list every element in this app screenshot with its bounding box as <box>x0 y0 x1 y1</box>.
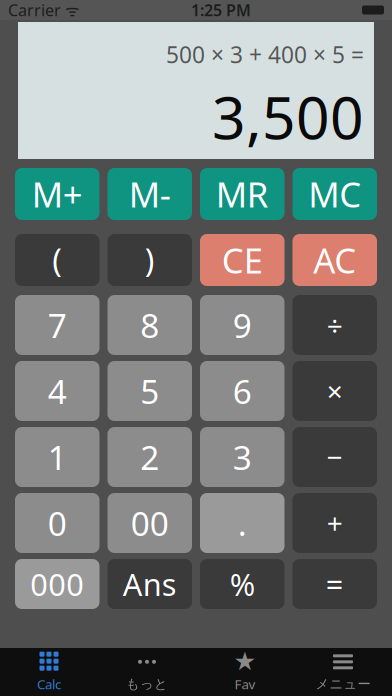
staticText: 3,500 <box>212 78 364 155</box>
button[interactable]: ) <box>107 234 192 286</box>
staticText: Fav <box>234 675 255 693</box>
staticText: Ans <box>123 564 177 604</box>
button[interactable]: − <box>292 427 377 487</box>
staticText: 3 <box>233 435 252 479</box>
button[interactable]: 8 <box>107 295 192 355</box>
staticText: Carrier ᯤ <box>8 0 80 21</box>
button[interactable]: . <box>200 493 284 553</box>
button[interactable]: ( <box>15 234 99 286</box>
staticText: 1 <box>48 435 67 479</box>
button[interactable]: 0 <box>15 493 99 553</box>
button[interactable]: 000 <box>15 559 99 609</box>
button[interactable]: MR <box>200 168 284 220</box>
staticText: 8 <box>140 303 159 347</box>
staticText: ) <box>145 239 155 281</box>
staticText: MR <box>216 171 269 217</box>
staticText: ★ <box>233 647 256 676</box>
staticText: 00 <box>131 501 169 545</box>
staticText: 7 <box>48 303 67 347</box>
staticText: もっと <box>126 676 168 692</box>
button[interactable]: Calc <box>0 648 98 696</box>
button[interactable]: 2 <box>107 427 192 487</box>
button[interactable]: ÷ <box>292 295 377 355</box>
button[interactable]: AC <box>292 234 377 286</box>
staticText: × <box>327 372 343 410</box>
button[interactable]: MC <box>292 168 377 220</box>
staticText: M+ <box>32 171 83 217</box>
button[interactable]: ★ <box>196 648 294 696</box>
button[interactable]: 1 <box>15 427 99 487</box>
staticText: 0 <box>48 501 67 545</box>
staticText: 2 <box>140 435 159 479</box>
staticText: 000 <box>30 564 84 604</box>
button[interactable]: CE <box>200 234 284 286</box>
staticText: + <box>327 504 343 542</box>
button[interactable]: M- <box>107 168 192 220</box>
staticText: 9 <box>233 303 252 347</box>
staticText: 5 <box>140 369 159 413</box>
staticText: ( <box>52 239 62 281</box>
staticText: 4 <box>48 369 67 413</box>
button[interactable]: メニュー <box>294 648 392 696</box>
button[interactable]: + <box>292 493 377 553</box>
button[interactable]: 3 <box>200 427 284 487</box>
staticText: AC <box>313 237 356 283</box>
staticText: = <box>326 564 344 604</box>
button[interactable]: × <box>292 361 377 421</box>
button[interactable]: 5 <box>107 361 192 421</box>
button[interactable]: 00 <box>107 493 192 553</box>
button[interactable]: = <box>292 559 377 609</box>
staticText: Calc <box>37 675 61 693</box>
button[interactable]: Ans <box>107 559 192 609</box>
button[interactable]: もっと <box>98 648 196 696</box>
staticText: − <box>327 438 343 476</box>
staticText: M- <box>129 171 171 217</box>
staticText: % <box>230 564 255 604</box>
button[interactable]: 4 <box>15 361 99 421</box>
staticText: MC <box>308 171 361 217</box>
staticText: . <box>238 501 247 545</box>
button[interactable]: 6 <box>200 361 284 421</box>
button[interactable]: M+ <box>15 168 99 220</box>
staticText: メニュー <box>315 676 370 692</box>
button[interactable]: 9 <box>200 295 284 355</box>
button[interactable]: 7 <box>15 295 99 355</box>
staticText: 6 <box>233 369 252 413</box>
staticText: 1:25 PM <box>191 0 251 21</box>
button[interactable]: % <box>200 559 284 609</box>
staticText: CE <box>222 237 263 283</box>
staticText: ÷ <box>327 306 343 344</box>
staticText: 500 × 3 + 400 × 5 = <box>166 39 364 70</box>
